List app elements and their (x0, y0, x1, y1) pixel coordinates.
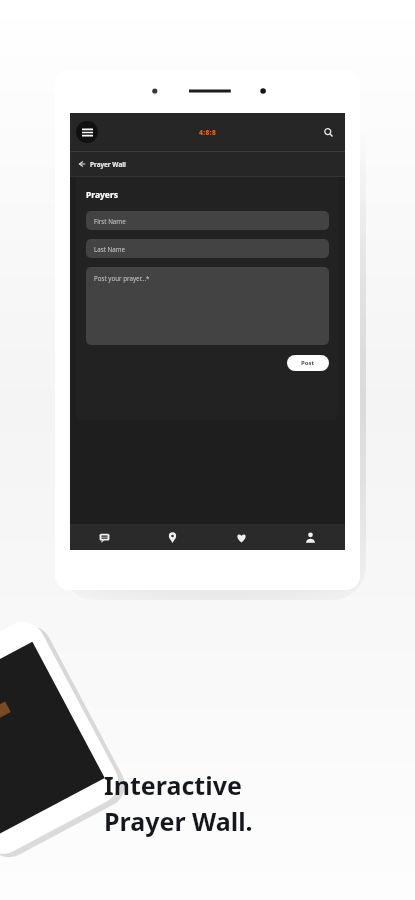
staticText: 4:8:8 (199, 128, 217, 137)
staticText: Prayers (86, 189, 118, 201)
button[interactable]: Favorites (207, 524, 276, 550)
button[interactable]: Prayer Wall (70, 152, 345, 176)
staticText: Interactive (104, 768, 242, 802)
staticText: First Name (94, 217, 126, 225)
button[interactable]: Profile (276, 524, 345, 550)
staticText: Prayer Wall (90, 160, 126, 169)
button[interactable]: Open menu (76, 121, 98, 143)
staticText: Last Name (94, 245, 125, 253)
button[interactable]: Locations (138, 524, 207, 550)
button[interactable]: Last Name (86, 239, 329, 258)
button[interactable]: First Name (86, 211, 329, 230)
staticText: Post your prayer...* (94, 274, 150, 282)
staticText: Prayer Wall. (104, 804, 253, 838)
button[interactable]: Messages (70, 524, 138, 550)
button[interactable]: Post (287, 355, 329, 371)
staticText: Post (301, 359, 315, 367)
button[interactable]: Search (319, 123, 337, 141)
button[interactable]: Post your prayer...* (86, 267, 329, 345)
